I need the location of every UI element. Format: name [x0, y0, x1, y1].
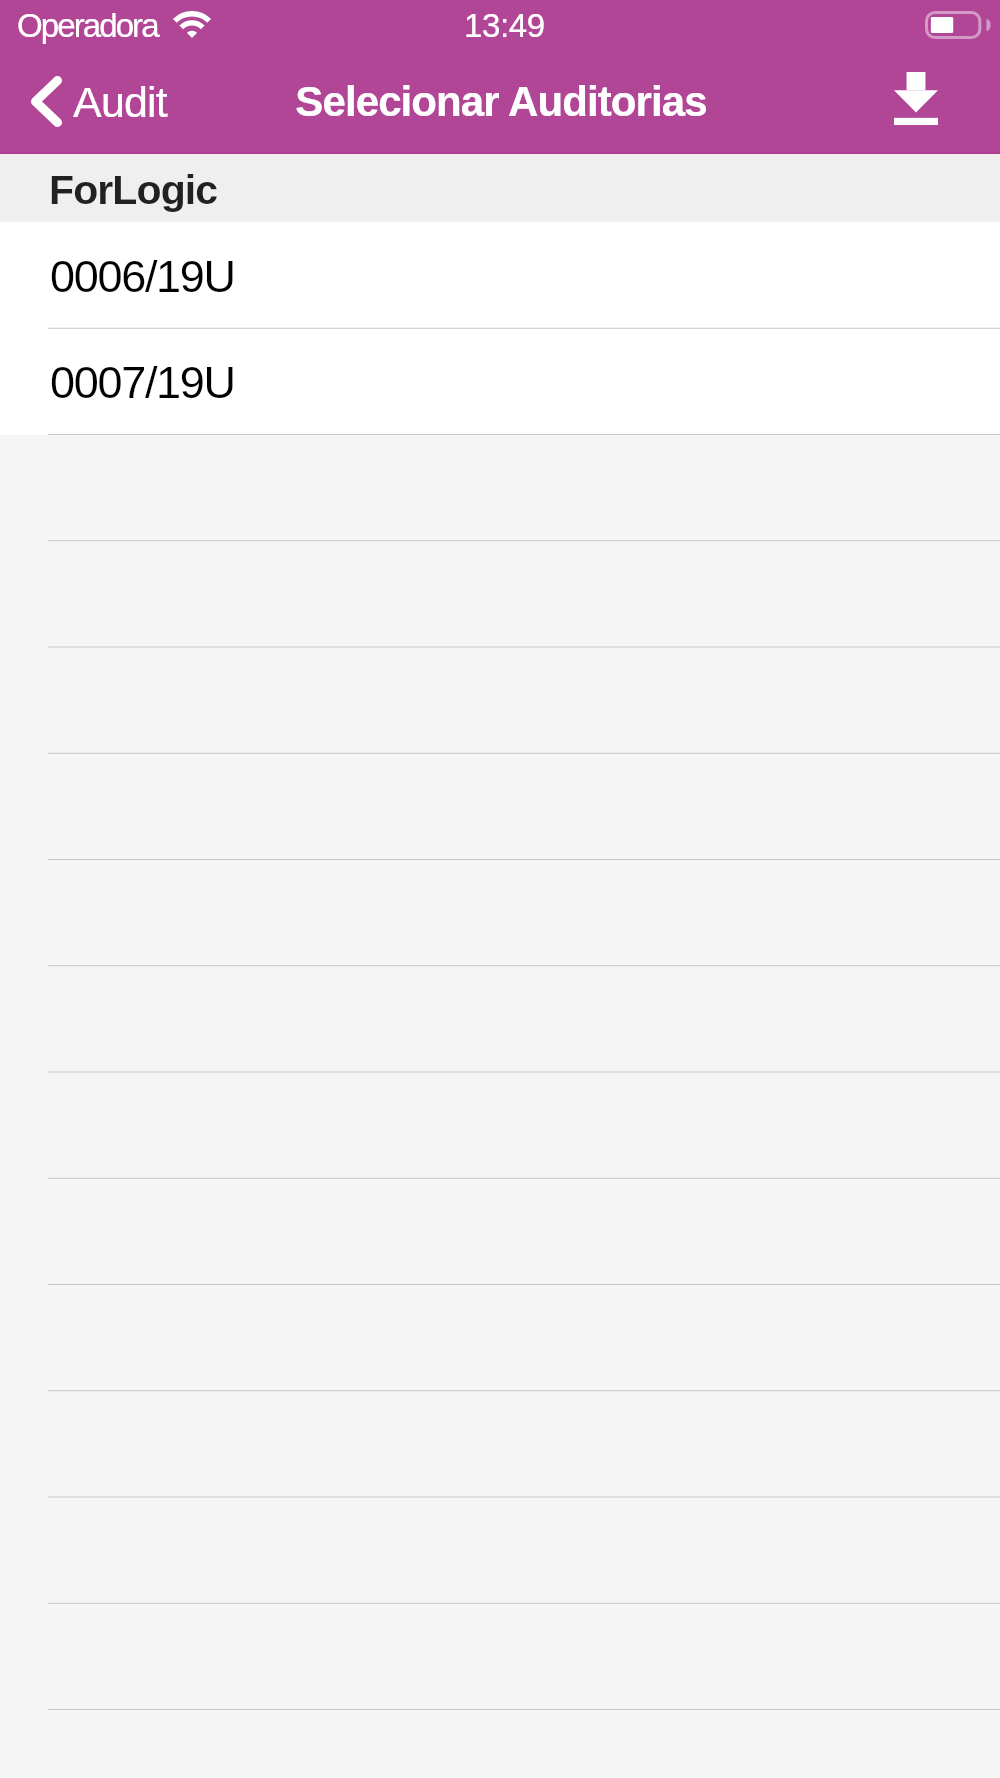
staticText: 0006/19U — [50, 251, 235, 301]
staticText: Audit — [73, 78, 168, 126]
button[interactable] — [0, 1706, 1000, 1778]
staticText: Operadora — [17, 7, 158, 44]
button[interactable] — [0, 540, 1000, 646]
button[interactable] — [0, 434, 1000, 540]
button[interactable] — [0, 964, 1000, 1070]
staticText: 0007/19U — [50, 357, 235, 407]
button[interactable] — [0, 1388, 1000, 1494]
button[interactable] — [0, 1600, 1000, 1706]
button[interactable] — [0, 1070, 1000, 1176]
button[interactable]: 0006/19U — [0, 222, 1000, 328]
staticText: ForLogic — [49, 167, 218, 213]
button[interactable]: Download — [870, 64, 1000, 145]
button[interactable] — [0, 752, 1000, 858]
button[interactable]: 0007/19U — [0, 328, 1000, 434]
button[interactable] — [0, 1176, 1000, 1282]
button[interactable] — [0, 1494, 1000, 1600]
button[interactable]: Back to Audit — [0, 69, 185, 140]
button[interactable] — [0, 858, 1000, 964]
button[interactable] — [0, 1282, 1000, 1388]
staticText: 13:49 — [464, 7, 545, 44]
button[interactable] — [0, 646, 1000, 752]
staticText: Selecionar Auditorias — [295, 78, 707, 125]
